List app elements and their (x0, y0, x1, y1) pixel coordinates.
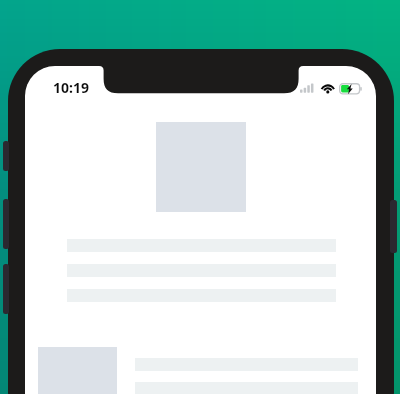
button[interactable]: Silent switch (3, 141, 9, 171)
button[interactable] (25, 116, 376, 308)
button[interactable]: Battery charging (337, 80, 363, 97)
button[interactable]: Signal and Wi-Fi status (298, 79, 336, 96)
staticText: 10:19 (53, 78, 89, 97)
button[interactable]: Volume down (3, 264, 9, 314)
button[interactable]: Power (390, 200, 397, 253)
button[interactable] (25, 338, 376, 394)
button[interactable]: Volume up (3, 199, 9, 249)
